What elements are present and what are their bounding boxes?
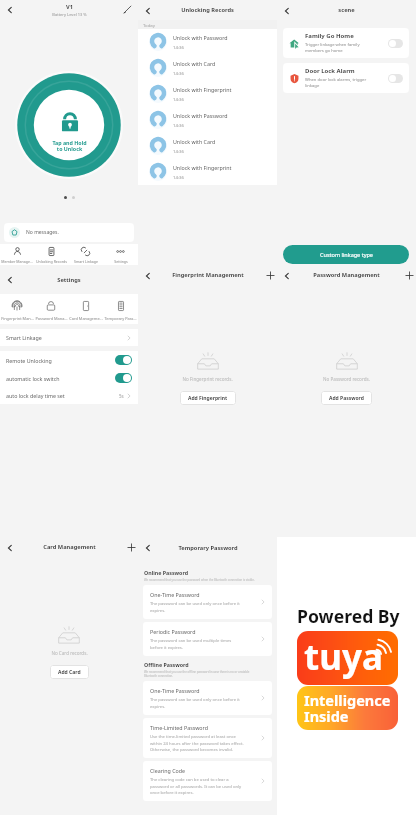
staticText: Card Manageme... [69,316,103,321]
staticText: Unlocking Records [181,6,234,14]
staticText: Unlock with Password [173,112,228,119]
button[interactable]: Back [141,4,154,17]
staticText: 14:36 [173,96,184,102]
staticText: When door lock alarms, trigger linkage [305,77,367,89]
staticText: Unlock with Card [173,60,216,67]
staticText: Unlock with Card [173,138,216,145]
staticText: No messages. [26,229,59,236]
button[interactable]: One-Time Password [143,585,272,619]
button[interactable]: Back [280,269,293,282]
button[interactable]: Unlocking Records [34,244,68,265]
button[interactable]: Off [388,74,403,83]
button[interactable]: automatic lock switch [0,369,138,387]
button[interactable]: auto lock delay time set [0,387,138,404]
button[interactable]: On [115,373,132,383]
staticText: 14:36 [173,148,184,154]
staticText: Add Fingerprint [188,395,228,402]
staticText: Settings [57,276,81,284]
staticText: One-Time Password [150,591,200,598]
staticText: Add Password [329,395,364,402]
button[interactable]: Unlock with Card [138,133,277,159]
button[interactable]: Unlock with Card [138,55,277,81]
staticText: The password can be used only once befor… [150,601,240,613]
button[interactable]: Unlock with Fingerprint [138,159,277,185]
button[interactable]: One-Time Password [143,681,272,715]
staticText: 14:36 [173,44,184,50]
button[interactable]: Settings [103,244,138,265]
button[interactable]: Periodic Password [143,622,272,656]
staticText: Unlock with Fingerprint [173,164,232,171]
staticText: The clearing code can be used to clear a… [150,777,242,795]
staticText: No Password records. [323,376,370,382]
staticText: We recommend that you use the offline pa… [144,670,271,678]
staticText: Clearing Code [150,767,185,774]
button[interactable]: Back [141,541,154,554]
staticText: Offline Password [144,661,189,668]
staticText: Periodic Password [150,628,196,635]
staticText: No Fingerprint records. [182,376,233,382]
staticText: Smart Linkage [74,259,98,264]
button[interactable]: Unlock with Password [138,29,277,55]
button[interactable]: Back [3,541,16,554]
button[interactable]: Remote Unlocking [0,351,138,369]
staticText: Intelligence Inside [304,690,391,726]
button[interactable]: Clearing Code [143,761,272,801]
staticText: The password can be used multiple times … [150,638,232,650]
staticText: Settings [114,259,128,264]
staticText: Member Manage... [1,259,33,264]
button[interactable]: Unlock with Fingerprint [138,81,277,107]
button[interactable]: On [115,355,132,365]
button[interactable]: Family Go Home [283,28,409,58]
staticText: Custom linkage type [320,251,373,258]
button[interactable]: Add [403,269,415,281]
staticText: The password can be used only once befor… [150,697,240,709]
staticText: tuya [304,633,383,681]
button[interactable]: Unlock with Password [138,107,277,133]
staticText: 14:36 [173,70,184,76]
button[interactable]: Add [125,541,137,553]
button[interactable]: Edit [121,3,134,16]
button[interactable]: Smart Linkage [0,329,138,346]
staticText: Password Mana... [35,316,68,321]
staticText: 5s [119,393,124,399]
staticText: Fingerprint Management [172,271,244,279]
button[interactable]: Smart Linkage [68,244,103,265]
button[interactable]: Add Password [321,391,372,405]
button[interactable]: Back [3,273,16,286]
button[interactable]: Custom linkage type [283,245,409,264]
staticText: 14:36 [173,122,184,128]
staticText: 14:36 [173,174,184,180]
button[interactable]: Card Manageme... [68,296,103,324]
staticText: Unlock with Password [173,34,228,41]
button[interactable]: Fingerprint Man... [0,296,34,324]
staticText: auto lock delay time set [6,392,119,399]
staticText: Unlock with Fingerprint [173,86,232,93]
button[interactable]: Back [141,269,154,282]
staticText: We recommend that you use the password w… [144,578,271,582]
staticText: One-Time Password [150,687,200,694]
button[interactable]: Off [388,39,403,48]
button[interactable]: Add Fingerprint [180,391,236,405]
staticText: scene [338,6,355,14]
staticText: Temporary Password [178,544,238,552]
staticText: automatic lock switch [6,375,115,382]
staticText: Unlocking Records [36,259,67,264]
staticText: Remote Unlocking [6,357,115,364]
staticText: No Card records. [51,650,88,656]
staticText: Card Management [43,543,96,551]
button[interactable]: Time-Limited Password [143,718,272,758]
button[interactable]: Password Mana... [34,296,68,324]
staticText: Online Password [144,569,189,576]
button[interactable]: No messages. [4,223,134,242]
button[interactable]: Back [3,3,16,16]
staticText: Time-Limited Password [150,724,208,731]
staticText: Powered By [297,604,400,628]
button[interactable]: Add [264,269,276,281]
button[interactable]: Back [280,4,293,17]
button[interactable]: Temporary Pass... [103,296,138,324]
staticText: Use the time-limited password at least o… [150,734,244,752]
staticText: Smart Linkage [6,334,126,341]
button[interactable]: Member Manage... [0,244,34,265]
button[interactable]: Add Card [50,665,89,679]
button[interactable]: Door Lock Alarm [283,63,409,93]
